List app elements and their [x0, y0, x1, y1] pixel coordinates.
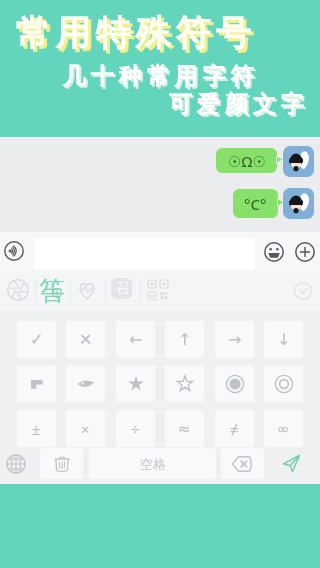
- staticText: ✕: [79, 330, 93, 349]
- staticText: 常用特殊符号: [16, 14, 256, 58]
- staticText: °C°: [244, 194, 267, 214]
- staticText: ✓: [30, 330, 44, 349]
- button[interactable]: ↓: [264, 321, 303, 358]
- button[interactable]: Camera: [7, 279, 29, 301]
- staticText: 可爱颜文字: [166, 90, 306, 119]
- button[interactable]: 空格: [89, 448, 216, 479]
- staticText: 可爱颜文字: [168, 92, 308, 121]
- staticText: ×: [81, 419, 90, 439]
- button[interactable]: Voice input: [4, 241, 24, 261]
- button[interactable]: Switch language: [6, 454, 26, 474]
- button[interactable]: ✓: [17, 321, 56, 358]
- staticText: →: [228, 330, 242, 349]
- staticText: ÷: [131, 419, 140, 439]
- button[interactable]: 召: [111, 278, 132, 299]
- button[interactable]: ÷: [116, 410, 155, 447]
- button[interactable]: More options: [295, 242, 315, 262]
- button[interactable]: ×: [66, 410, 105, 447]
- button[interactable]: ±: [17, 410, 56, 447]
- button[interactable]: →: [215, 321, 254, 358]
- button[interactable]: ←: [116, 321, 155, 358]
- button[interactable]: ☉Ω☉: [216, 148, 277, 173]
- button[interactable]: Clear: [40, 448, 83, 479]
- button[interactable]: [264, 365, 303, 402]
- staticText: 空格: [140, 456, 166, 472]
- button[interactable]: [116, 365, 155, 402]
- button[interactable]: Backspace: [221, 448, 264, 479]
- staticText: 常用特殊符号: [13, 11, 253, 55]
- button[interactable]: ≈: [165, 410, 204, 447]
- button[interactable]: Send: [269, 448, 312, 479]
- staticText: ↑: [178, 330, 192, 349]
- button[interactable]: ≠: [215, 410, 254, 447]
- staticText: ←: [129, 330, 143, 349]
- staticText: ±: [32, 419, 41, 439]
- staticText: 几十种常用字符: [62, 64, 258, 93]
- staticText: ∞: [277, 420, 290, 437]
- button[interactable]: Collapse keyboard: [294, 282, 312, 300]
- staticText: ☉Ω☉: [228, 151, 266, 171]
- button[interactable]: Heartbeat: [77, 280, 97, 300]
- staticText: 筶: [39, 275, 65, 305]
- button[interactable]: Contact avatar: [283, 188, 314, 219]
- staticText: 召: [115, 280, 129, 298]
- button[interactable]: [66, 365, 105, 402]
- button[interactable]: [215, 365, 254, 402]
- staticText: ≠: [230, 419, 239, 439]
- button[interactable]: ✕: [66, 321, 105, 358]
- staticText: 几十种常用字符: [60, 62, 256, 91]
- button[interactable]: Emoji: [264, 242, 284, 262]
- button[interactable]: 筶: [39, 275, 69, 305]
- button[interactable]: [165, 365, 204, 402]
- staticText: ≈: [178, 420, 191, 437]
- button[interactable]: ↑: [165, 321, 204, 358]
- button[interactable]: ∞: [264, 410, 303, 447]
- button[interactable]: °C°: [233, 189, 278, 218]
- button[interactable]: QR code: [148, 280, 168, 300]
- button[interactable]: [17, 365, 56, 402]
- button[interactable]: Contact avatar: [283, 146, 314, 177]
- staticText: ↓: [277, 330, 291, 349]
